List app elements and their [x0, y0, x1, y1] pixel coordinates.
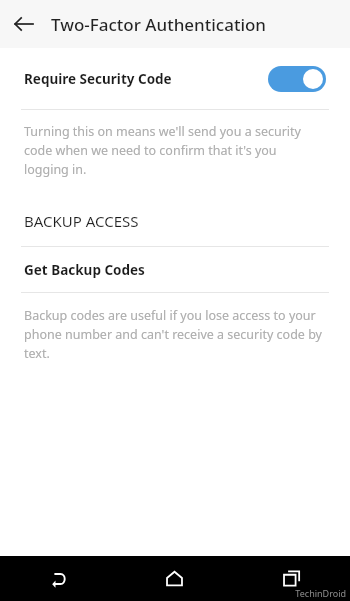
- staticText: Require Security Code: [24, 70, 268, 88]
- staticText: BACKUP ACCESS: [24, 211, 139, 231]
- button[interactable]: Back: [6, 6, 42, 42]
- button[interactable]: Require Security Code: [0, 48, 350, 109]
- staticText: Get Backup Codes: [24, 261, 145, 279]
- button[interactable]: Recent apps: [233, 556, 350, 601]
- staticText: Backup codes are useful if you lose acce…: [24, 307, 322, 362]
- button[interactable]: Back: [0, 556, 116, 601]
- button[interactable]: Get Backup Codes: [0, 247, 350, 292]
- staticText: Turning this on means we'll send you a s…: [24, 123, 322, 178]
- button[interactable]: Require Security Code toggle: [268, 66, 326, 92]
- staticText: TechinDroid: [295, 587, 346, 599]
- button[interactable]: Home: [116, 556, 233, 601]
- staticText: Two-Factor Authentication: [51, 13, 267, 36]
